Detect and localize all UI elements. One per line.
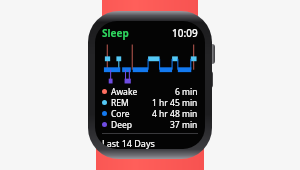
button[interactable]: Awake	[102, 86, 198, 97]
staticText: REM	[111, 97, 129, 108]
staticText: Core	[111, 108, 130, 119]
staticText: 6 min	[175, 86, 198, 97]
staticText: Deep	[111, 119, 133, 130]
button[interactable]: Last 14 Days	[102, 137, 198, 149]
button[interactable]: Deep	[102, 119, 198, 130]
staticText: Last 14 Days	[102, 137, 155, 149]
staticText: 4 hr 48 min	[152, 108, 198, 119]
button[interactable]: Sleep stages chart	[102, 42, 198, 84]
staticText: Sleep	[102, 26, 129, 40]
button[interactable]: REM	[102, 97, 198, 108]
staticText: 1 hr 45 min	[152, 97, 198, 108]
staticText: 10:09	[172, 26, 198, 40]
button[interactable]: Core	[102, 108, 198, 119]
button[interactable]: Side button	[206, 71, 213, 88]
button[interactable]: Digital Crown	[205, 44, 215, 64]
staticText: 37 min	[170, 119, 198, 130]
staticText: Awake	[111, 86, 138, 97]
button[interactable]: Sleep	[102, 26, 129, 40]
